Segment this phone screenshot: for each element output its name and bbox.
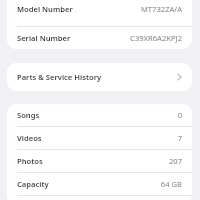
button[interactable]: Videos [7,127,192,149]
staticText: Model Number [17,4,73,14]
button[interactable]: Photos [7,150,192,172]
button[interactable]: Capacity [7,173,192,195]
other: Open [177,73,182,81]
staticText: Videos [17,133,42,143]
staticText: Photos [17,156,43,166]
button[interactable]: Model Number [7,0,192,26]
staticText: Capacity [17,179,49,189]
staticText: 7 [177,133,182,143]
staticText: Parts & Service History [17,72,102,82]
staticText: Serial Number [17,33,71,43]
staticText: 207 [168,156,182,166]
button[interactable]: Songs [7,104,192,126]
button[interactable]: Parts & Service History [7,63,192,91]
button[interactable]: Serial Number [7,27,192,49]
staticText: C39XR6A2KPJ2 [130,33,182,43]
staticText: Songs [17,110,40,120]
staticText: MT732ZA/A [140,4,182,14]
staticText: 0 [177,110,182,120]
staticText: 64 GB [160,179,182,189]
